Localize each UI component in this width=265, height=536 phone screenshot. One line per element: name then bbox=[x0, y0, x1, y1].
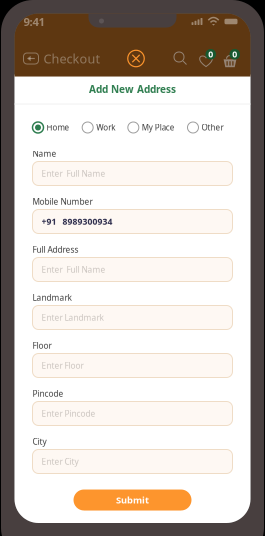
staticText: Name bbox=[32, 148, 56, 159]
button[interactable]: Close bbox=[126, 49, 145, 68]
button[interactable]: Cart bbox=[221, 48, 241, 68]
button[interactable]: Search bbox=[171, 49, 189, 67]
staticText: Enter Landmark bbox=[41, 312, 103, 323]
staticText: Work bbox=[96, 122, 115, 133]
staticText: Floor bbox=[32, 340, 51, 351]
button[interactable]: Submit bbox=[73, 489, 191, 510]
staticText: Enter Full Name bbox=[41, 168, 105, 179]
staticText: Landmark bbox=[32, 292, 71, 303]
staticText: Other bbox=[201, 122, 223, 133]
staticText: Mobile Number bbox=[32, 196, 92, 207]
staticText: Home bbox=[46, 122, 69, 133]
staticText: Full Address bbox=[32, 244, 78, 255]
button[interactable]: Home bbox=[32, 122, 69, 133]
staticText: My Place bbox=[142, 122, 175, 133]
staticText: Pincode bbox=[32, 388, 63, 399]
button[interactable]: Checkout bbox=[14, 47, 100, 70]
button[interactable]: Other bbox=[187, 122, 223, 133]
staticText: +91 8989300934 bbox=[41, 216, 112, 227]
staticText: Submit bbox=[116, 494, 149, 506]
staticText: Enter Pincode bbox=[41, 408, 95, 419]
staticText: 0 bbox=[208, 48, 213, 60]
staticText: Add New Address bbox=[89, 82, 176, 96]
staticText: Enter Full Name bbox=[41, 264, 105, 275]
button[interactable]: My Place bbox=[128, 122, 175, 133]
staticText: City bbox=[32, 436, 46, 447]
button[interactable]: Work bbox=[82, 122, 115, 133]
button[interactable]: Wishlist bbox=[197, 48, 217, 68]
staticText: 9:41 bbox=[23, 14, 44, 29]
staticText: Enter Floor bbox=[41, 360, 83, 371]
staticText: 0 bbox=[232, 48, 237, 60]
staticText: Checkout bbox=[43, 50, 100, 67]
staticText: Enter City bbox=[41, 456, 78, 467]
